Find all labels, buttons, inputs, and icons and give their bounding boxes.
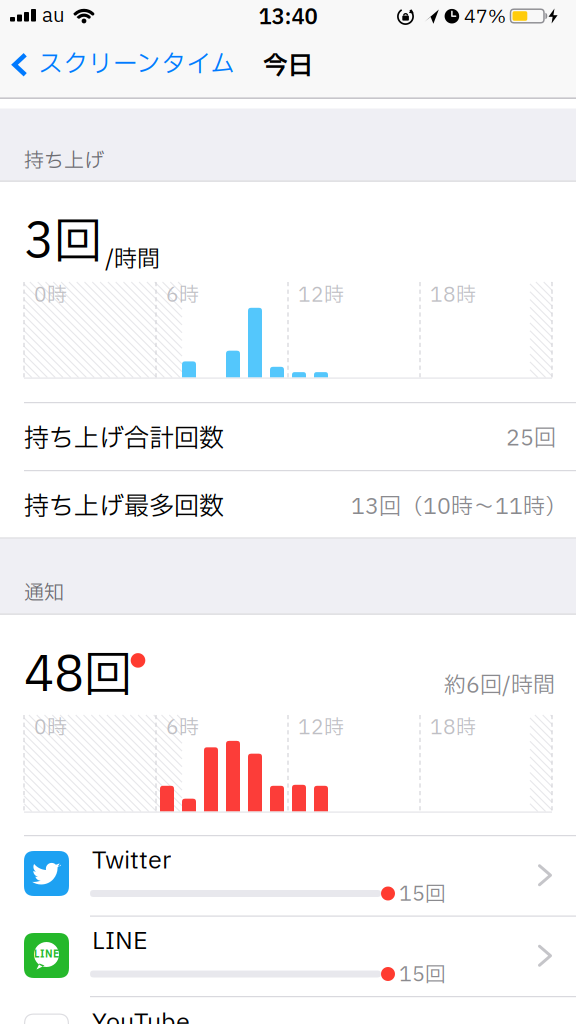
staticText: YouTube: [92, 1005, 190, 1024]
button[interactable]: LINE: [0, 915, 576, 996]
staticText: 13回（10時〜11時）: [351, 491, 567, 524]
button[interactable]: Twitter: [0, 835, 576, 915]
staticText: 18時: [430, 713, 476, 743]
staticText: 約6回/時間: [444, 669, 555, 702]
staticText: 25回: [506, 422, 556, 455]
staticText: 今日: [263, 48, 313, 85]
staticText: 持ち上げ合計回数: [24, 420, 224, 458]
staticText: au: [42, 1, 65, 31]
staticText: 3回: [24, 206, 102, 278]
staticText: 持ち上げ最多回数: [24, 488, 224, 526]
staticText: 6時: [166, 713, 199, 743]
staticText: 6時: [166, 280, 199, 310]
staticText: 15回: [399, 879, 446, 910]
staticText: 通知: [24, 578, 64, 608]
button[interactable]: 戻る: [0, 37, 235, 93]
staticText: 0時: [34, 280, 67, 310]
button[interactable]: YouTube: [0, 996, 576, 1024]
staticText: Twitter: [92, 843, 171, 879]
staticText: 47%: [464, 3, 506, 31]
staticText: 持ち上げ: [24, 146, 104, 176]
staticText: 15回: [399, 960, 446, 990]
staticText: スクリーンタイム: [38, 46, 235, 83]
staticText: 48回: [24, 640, 132, 712]
staticText: 12時: [298, 280, 344, 310]
staticText: /時間: [105, 242, 160, 276]
staticText: 18時: [430, 280, 476, 310]
staticText: LINE: [92, 923, 148, 959]
staticText: 13:40: [258, 2, 317, 33]
staticText: 12時: [298, 713, 344, 743]
staticText: LINE: [34, 947, 59, 962]
staticText: 0時: [34, 713, 67, 743]
